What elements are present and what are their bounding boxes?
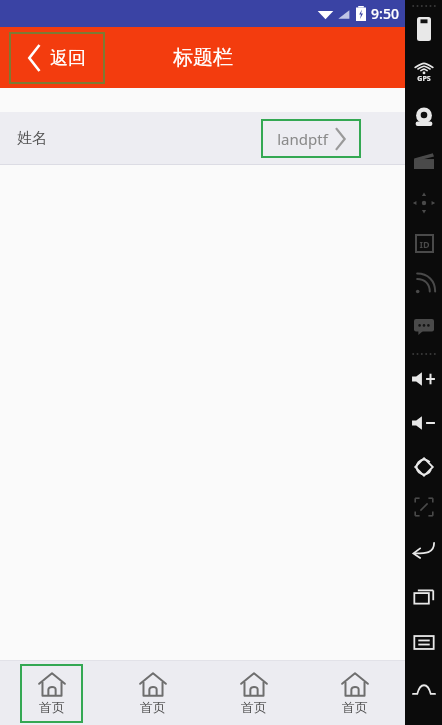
staticText: 首页 xyxy=(39,699,65,715)
button[interactable]: Emulator control xyxy=(409,58,439,88)
button[interactable]: Emulator control xyxy=(409,270,439,300)
button[interactable]: Emulator control xyxy=(409,452,439,482)
button[interactable]: 首页 xyxy=(222,664,285,723)
button[interactable]: Emulator control xyxy=(409,408,439,438)
button[interactable]: Emulator control xyxy=(409,627,439,657)
button[interactable]: 首页 xyxy=(20,664,83,723)
staticText: 返回 xyxy=(50,47,86,70)
button[interactable]: Emulator control xyxy=(409,673,439,703)
button[interactable]: 首页 xyxy=(121,664,184,723)
button[interactable]: Emulator control xyxy=(409,228,439,258)
staticText: GPS xyxy=(417,74,431,84)
button[interactable]: Emulator control xyxy=(409,312,439,342)
button[interactable]: landptf xyxy=(261,119,361,158)
button[interactable]: Emulator control xyxy=(409,492,439,522)
staticText: 首页 xyxy=(342,699,368,715)
staticText: 姓名 xyxy=(17,129,47,148)
staticText: landptf xyxy=(277,129,328,149)
button[interactable]: 姓名 xyxy=(0,112,405,164)
button[interactable]: Emulator control xyxy=(409,14,439,44)
button[interactable]: Emulator control xyxy=(409,146,439,176)
staticText: 9:50 xyxy=(371,4,399,23)
button[interactable]: Emulator control xyxy=(409,188,439,218)
staticText: 标题栏 xyxy=(173,45,233,70)
button[interactable]: Emulator control xyxy=(409,364,439,394)
button[interactable]: 首页 xyxy=(323,664,386,723)
button[interactable]: Emulator control xyxy=(409,102,439,132)
button[interactable]: 返回 xyxy=(9,32,105,84)
staticText: 首页 xyxy=(140,699,166,715)
staticText: ID xyxy=(419,238,430,250)
button[interactable]: Emulator control xyxy=(409,533,439,563)
button[interactable]: Emulator control xyxy=(409,581,439,611)
staticText: 首页 xyxy=(241,699,267,715)
